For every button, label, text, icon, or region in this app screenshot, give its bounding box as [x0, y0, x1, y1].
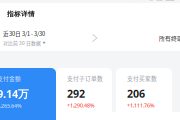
staticText: +1,290.48%: [67, 102, 95, 109]
staticText: +1,111.76%: [127, 102, 155, 109]
staticText: 292: [67, 86, 85, 101]
staticText: 2,265.64%: [0, 102, 22, 109]
button[interactable]: 支付金额: [0, 68, 56, 120]
staticText: 支付买家数: [127, 74, 157, 82]
staticText: 206: [127, 86, 145, 101]
staticText: 对比前 30 日数据: [3, 39, 41, 46]
staticText: 9.14万: [0, 86, 29, 101]
button[interactable]: 所有终端: [159, 34, 180, 42]
staticText: 支付金额: [0, 74, 21, 82]
staticText: 支付子订单数: [67, 74, 103, 82]
staticText: 近30日 3/1 - 3/30: [3, 30, 45, 38]
staticText: 所有终端: [159, 34, 180, 42]
button[interactable]: 支付买家数: [116, 68, 172, 120]
staticText: 指标详情: [7, 10, 35, 18]
button[interactable]: 支付子订单数: [56, 68, 112, 120]
button[interactable]: 近30日 3/1 - 3/30: [0, 30, 46, 46]
button[interactable]: Open metric picker: [88, 30, 102, 46]
